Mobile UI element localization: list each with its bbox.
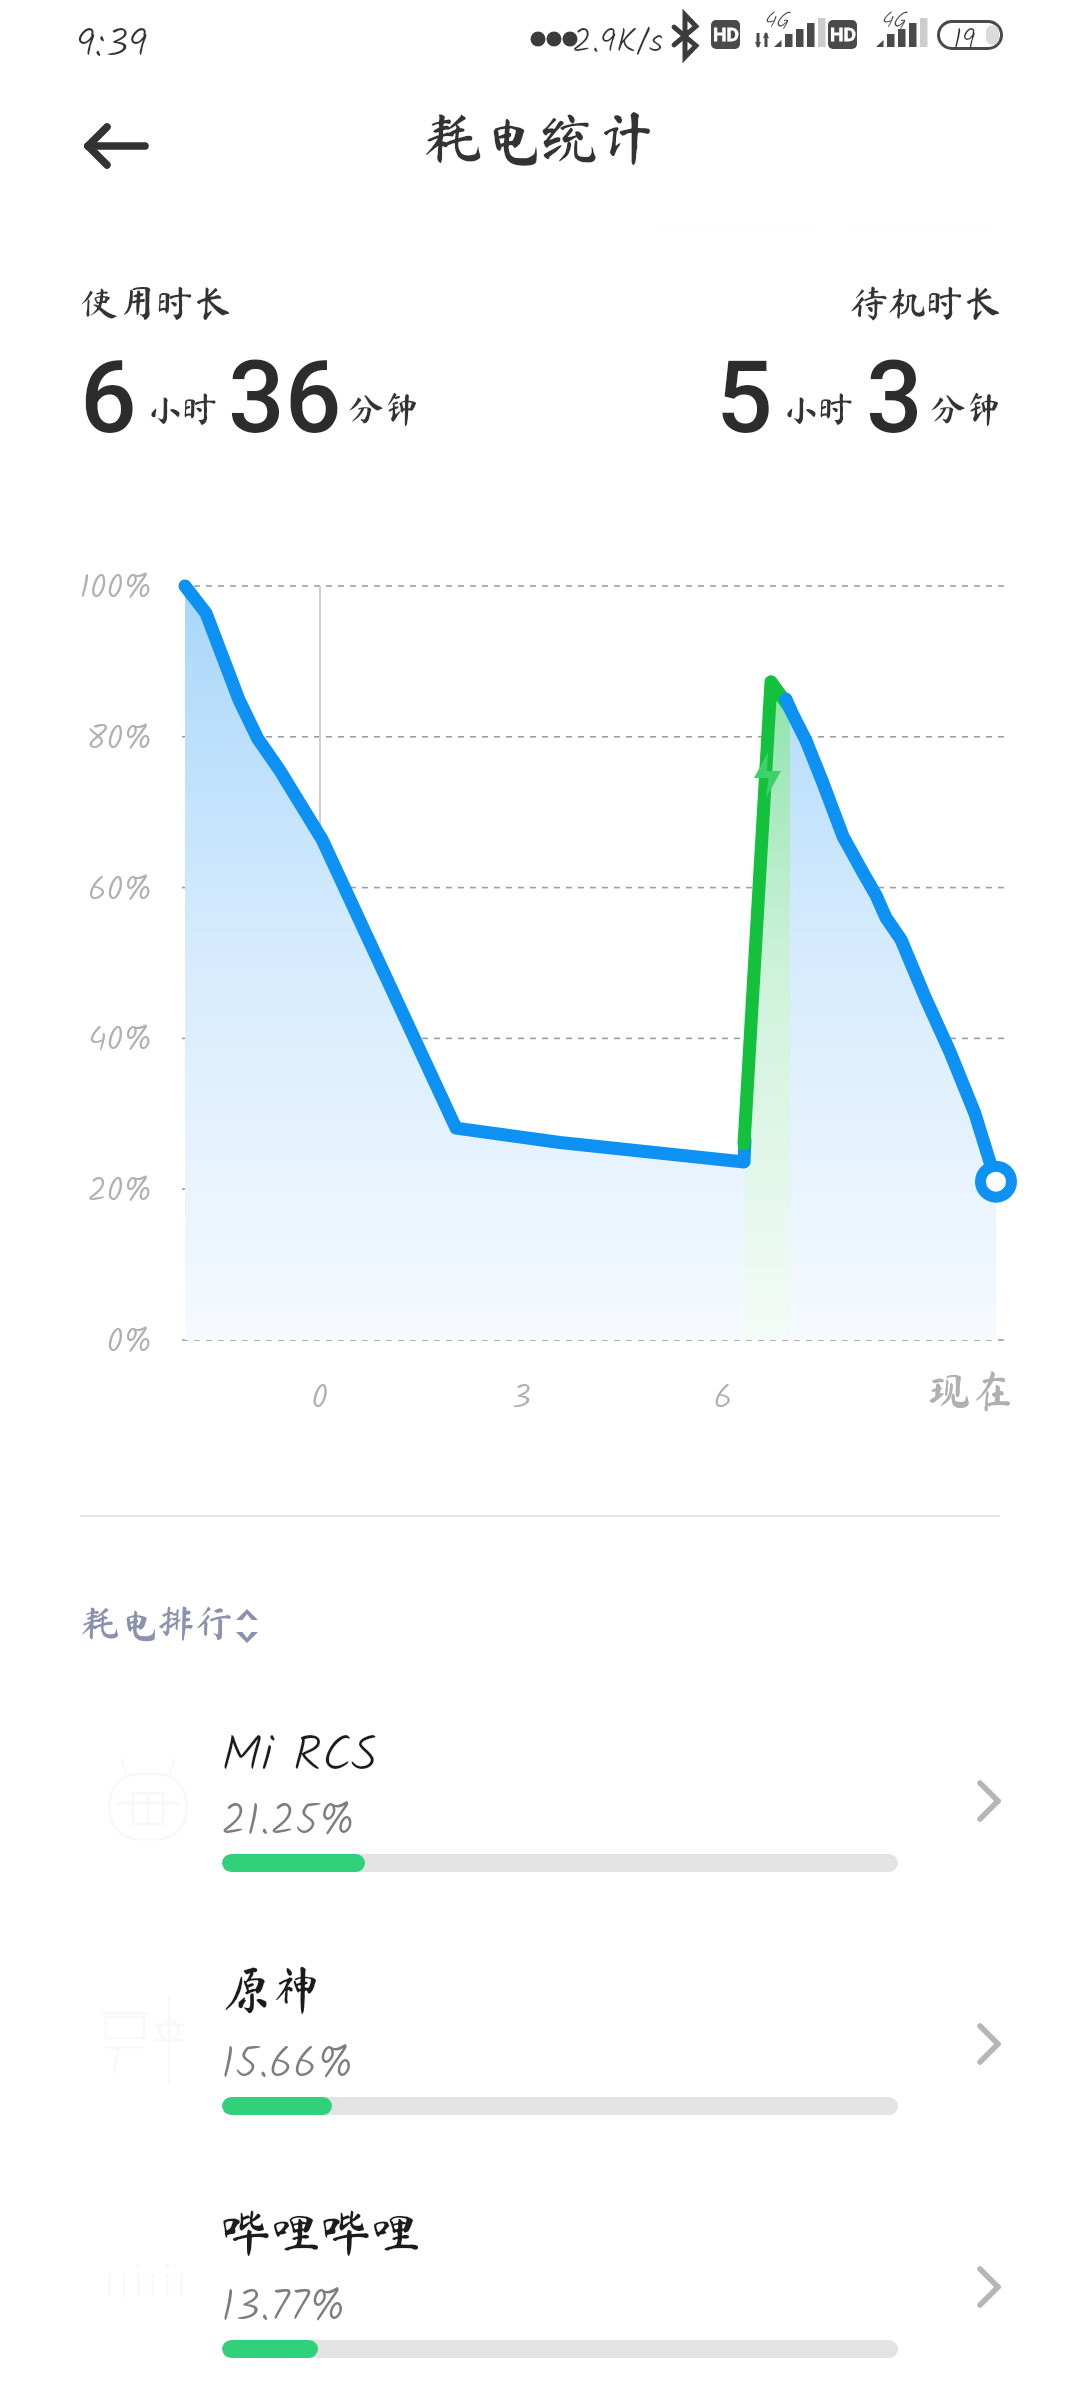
staticText: Mi RCS xyxy=(221,1717,378,1797)
staticText: 40% xyxy=(0,1014,152,1068)
staticText: 9:39 xyxy=(76,13,148,77)
staticText: 6 xyxy=(653,1372,793,1426)
staticText: 使用时长 xyxy=(80,284,233,322)
staticText: 60% xyxy=(0,864,152,918)
staticText: 15.66% xyxy=(221,2031,354,2100)
staticText: 4G xyxy=(880,4,906,39)
staticText: 小时 xyxy=(146,390,219,426)
staticText: 3 xyxy=(866,339,923,456)
staticText: 0% xyxy=(0,1316,152,1370)
button[interactable]: 耗电排行 xyxy=(70,1592,280,1670)
button[interactable]: Mi RCS xyxy=(0,1705,1080,1935)
staticText: 20% xyxy=(0,1165,152,1219)
staticText: 5 xyxy=(716,339,773,456)
staticText: 分钟 xyxy=(930,390,1003,426)
staticText: 现在 xyxy=(901,1368,1041,1412)
staticText: 6 xyxy=(80,339,137,456)
staticText: 待机时长 xyxy=(0,284,1002,322)
staticText: 2.9K/s xyxy=(572,16,663,70)
button[interactable]: Back xyxy=(56,100,174,192)
staticText: 哔哩哔哩 xyxy=(221,2207,421,2257)
staticText: 100% xyxy=(0,562,152,616)
staticText: 分钟 xyxy=(348,390,421,426)
staticText: 小时 xyxy=(782,390,855,426)
staticText: 13.77% xyxy=(221,2274,346,2343)
staticText: 耗电统计 xyxy=(0,108,1080,166)
staticText: HD xyxy=(830,23,856,45)
staticText: HD xyxy=(713,23,739,45)
staticText: 0 xyxy=(250,1372,390,1426)
staticText: 3 xyxy=(451,1372,591,1426)
button[interactable]: 原神 xyxy=(0,1948,1080,2178)
button[interactable]: 哔哩哔哩 xyxy=(0,2191,1080,2400)
staticText: 19 xyxy=(953,18,976,48)
staticText: 耗电排行 xyxy=(81,1604,234,1642)
staticText: 36 xyxy=(228,339,342,456)
staticText: 21.25% xyxy=(221,1788,355,1857)
staticText: 80% xyxy=(0,713,152,767)
staticText: 原神 xyxy=(221,1964,321,2014)
staticText: 4G xyxy=(763,4,789,39)
